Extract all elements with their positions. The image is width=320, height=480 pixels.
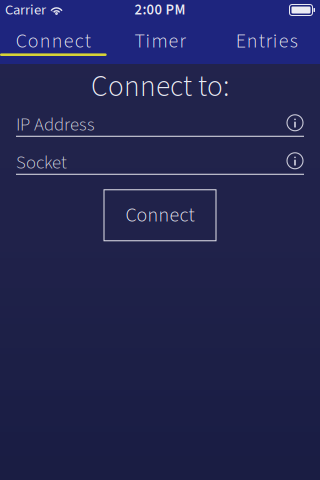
- button[interactable]: Socket: [16, 152, 304, 175]
- button[interactable]: Connect: [0, 20, 107, 56]
- button[interactable]: Timer: [107, 20, 213, 56]
- button[interactable]: Info: [286, 113, 304, 133]
- staticText: 2:00 PM: [134, 0, 185, 20]
- button[interactable]: IP Address: [16, 114, 304, 137]
- staticText: Timer: [134, 27, 185, 55]
- button[interactable]: Entries: [213, 20, 320, 56]
- button[interactable]: Info: [286, 151, 304, 171]
- staticText: Connect: [16, 27, 91, 55]
- staticText: IP Address: [16, 111, 95, 138]
- button[interactable]: Connect: [104, 190, 216, 241]
- staticText: Socket: [16, 149, 67, 176]
- staticText: Carrier: [5, 0, 46, 20]
- staticText: Connect: [125, 201, 194, 229]
- staticText: Connect to:: [91, 66, 229, 108]
- staticText: Entries: [236, 27, 298, 55]
